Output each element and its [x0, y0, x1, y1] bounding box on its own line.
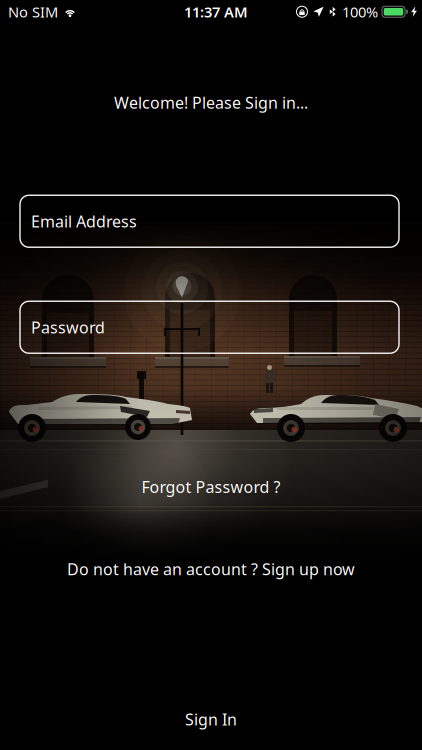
staticText: Password — [31, 317, 105, 338]
staticText: 11:37 AM — [184, 2, 248, 21]
staticText: Email Address — [31, 211, 137, 232]
staticText: 100% — [342, 2, 378, 21]
button[interactable]: Email Address — [20, 195, 399, 247]
button[interactable]: Sign In — [0, 709, 422, 730]
staticText: Sign In — [185, 709, 237, 730]
button[interactable]: Forgot Password ? — [0, 476, 422, 497]
staticText: Forgot Password ? — [141, 476, 280, 497]
staticText: Do not have an account ? Sign up now — [67, 558, 355, 580]
staticText: Welcome! Please Sign in... — [114, 92, 308, 113]
button[interactable]: Password — [20, 301, 399, 353]
staticText: No SIM — [8, 2, 58, 21]
button[interactable]: Do not have an account ? Sign up now — [0, 558, 422, 580]
